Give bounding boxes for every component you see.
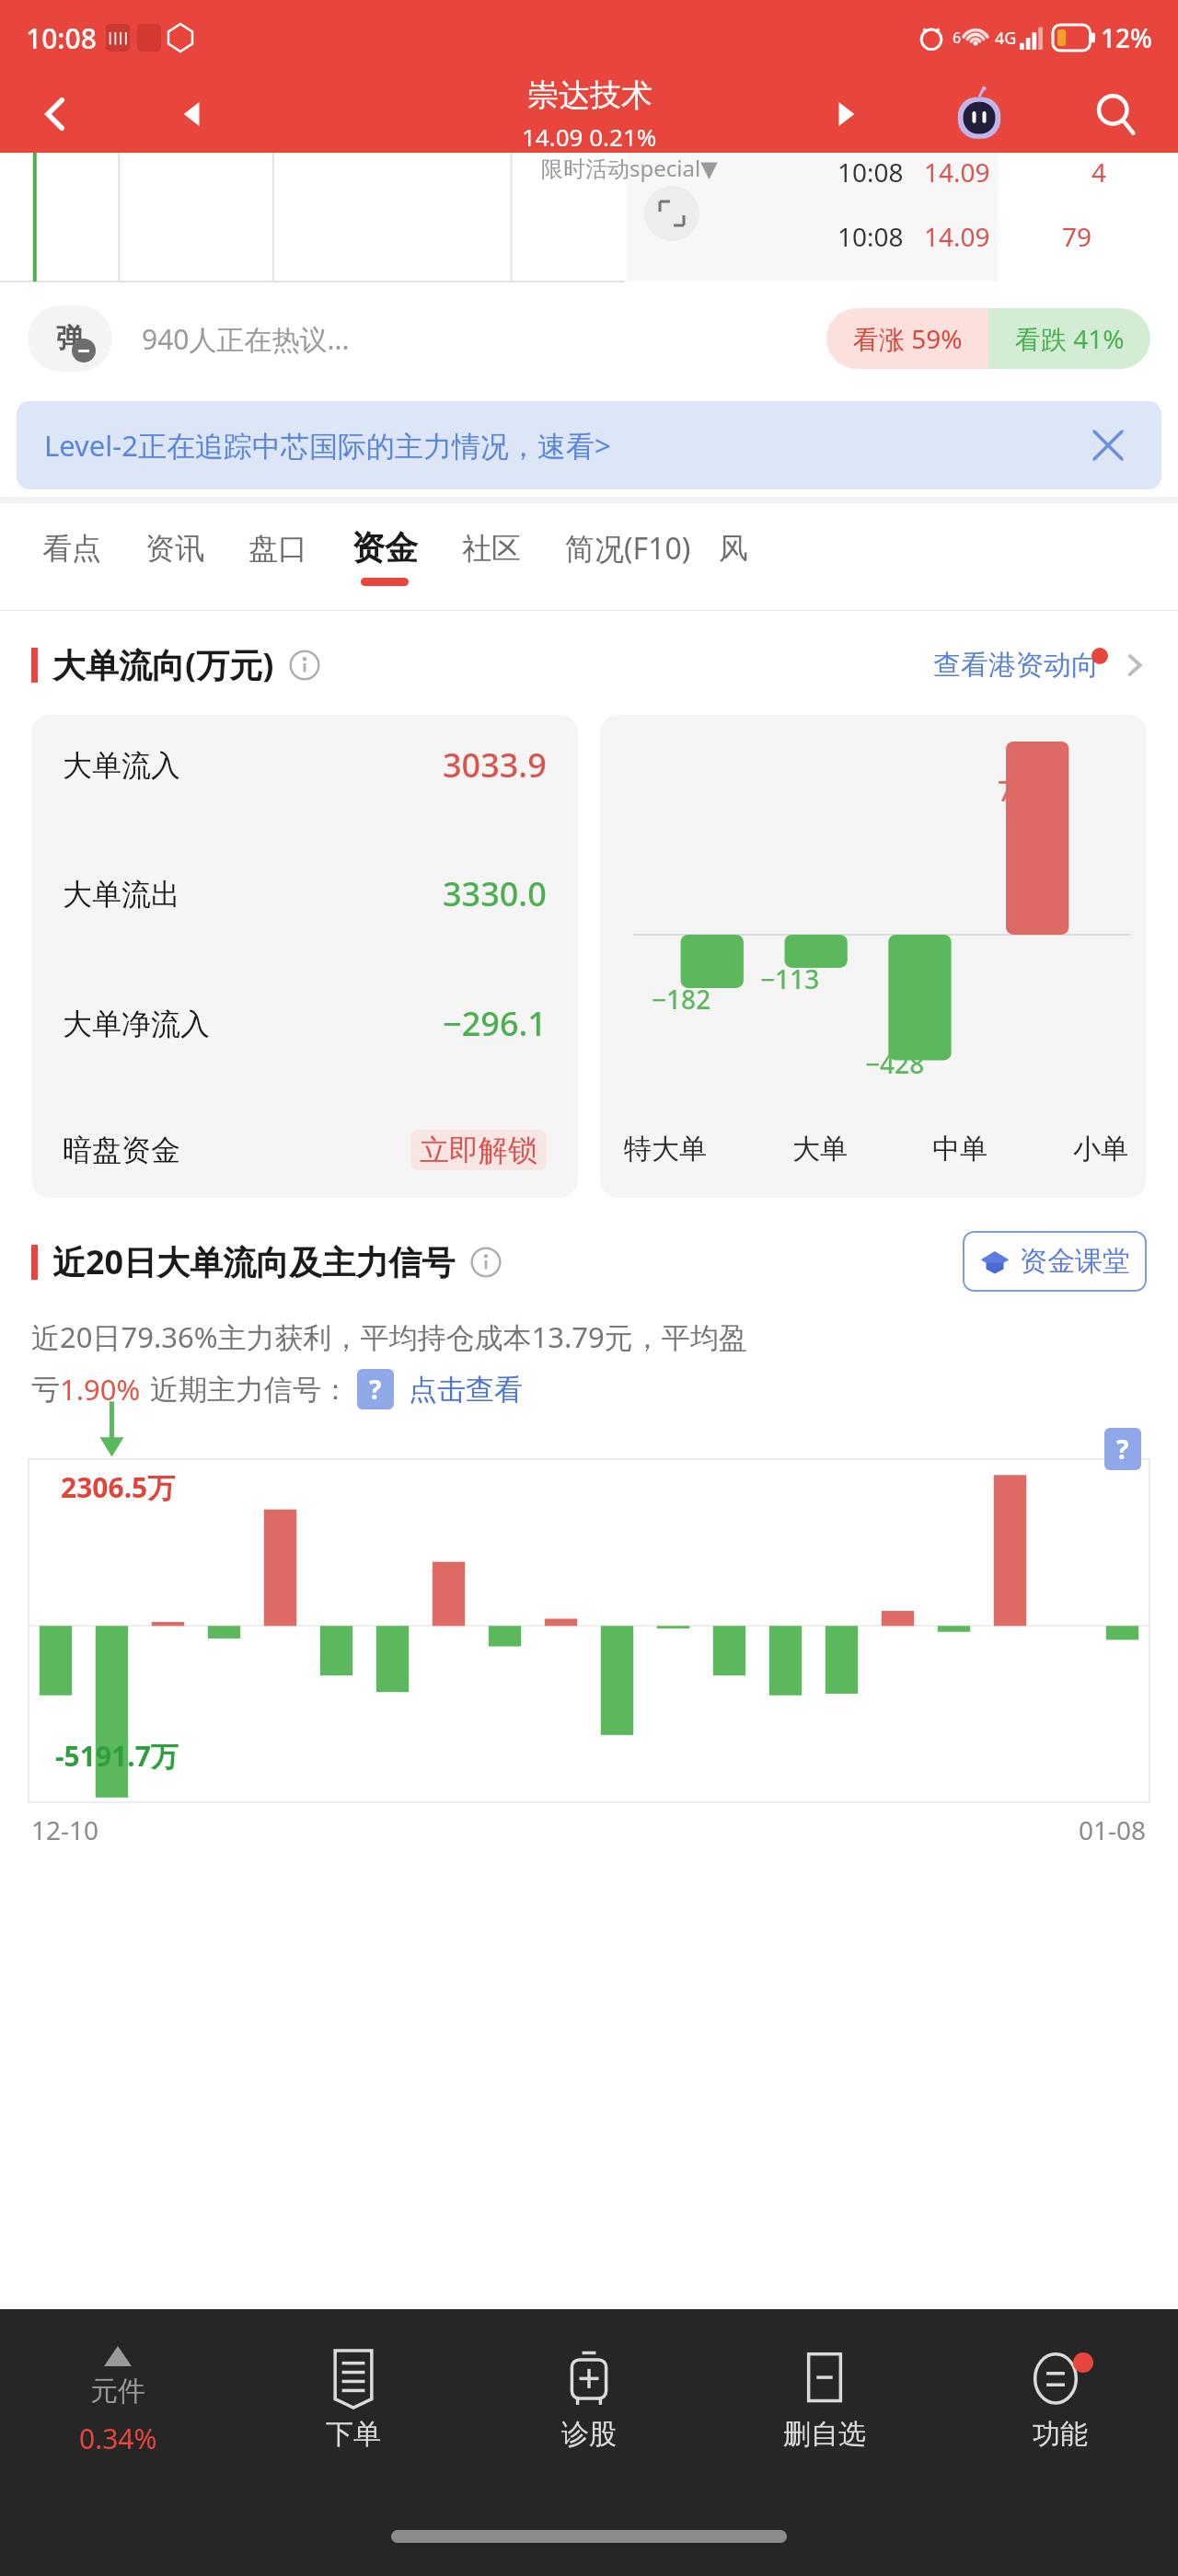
staticText: 弹 <box>56 321 84 356</box>
staticText: −182 <box>652 982 711 1017</box>
staticText: 3330.0 <box>443 871 547 916</box>
button[interactable]: 看点 <box>42 503 101 610</box>
staticText: 14.09 <box>924 155 990 190</box>
staticText: 简况(F10) <box>565 528 691 569</box>
button[interactable]: 下单 <box>236 2309 471 2493</box>
button[interactable]: Back <box>22 81 88 147</box>
staticText: 近期主力信号： <box>150 1372 350 1408</box>
button[interactable]: 查看港资动向 <box>933 648 1147 683</box>
staticText: 查看港资动向 <box>933 648 1099 683</box>
button[interactable]: Level-2正在追踪中芯国际的主力情况，速看> <box>17 401 1161 489</box>
staticText: 看点 <box>42 530 101 567</box>
staticText: 删自选 <box>783 2417 866 2452</box>
button[interactable]: 立即解锁 <box>410 1130 547 1170</box>
staticText: 暗盘资金 <box>63 1132 180 1168</box>
staticText: 崇达技术 <box>527 75 653 115</box>
button[interactable]: AI assistant <box>946 81 1012 147</box>
button[interactable]: Search <box>1079 77 1152 151</box>
button[interactable]: 诊股 <box>471 2309 707 2493</box>
staticText: 盘口 <box>248 530 307 567</box>
button[interactable]: 点击查看 <box>409 1372 523 1408</box>
staticText: 10:08 <box>837 219 904 254</box>
staticText: 3033.9 <box>443 742 547 788</box>
button[interactable]: 盘口 <box>248 503 307 610</box>
staticText: 6 <box>953 28 962 48</box>
staticText: 立即解锁 <box>420 1132 537 1168</box>
staticText: 看涨 59% <box>853 321 963 356</box>
staticText: 亏 <box>31 1372 60 1408</box>
button[interactable]: 社区 <box>462 503 521 610</box>
staticText: 14.09 <box>924 219 990 254</box>
staticText: 限时活动special▼ <box>541 153 718 183</box>
staticText: 近20日79.36%主力获利，平均持仓成本13.79元，平均盈 <box>31 1317 747 1356</box>
staticText: 14.09 0.21% <box>522 121 657 153</box>
staticText: 1.90% <box>60 1370 141 1409</box>
staticText: 看跌 41% <box>1015 321 1125 356</box>
staticText: −428 <box>865 1046 925 1081</box>
staticText: 79 <box>1062 219 1092 254</box>
staticText: 风 <box>719 530 748 567</box>
button[interactable]: Previous stock <box>164 85 223 144</box>
staticText: Level-2正在追踪中芯国际的主力情况，速看> <box>44 426 611 465</box>
staticText: 大单流入 <box>63 747 180 784</box>
button[interactable]: 简况(F10) <box>565 503 691 610</box>
staticText: 诊股 <box>561 2417 617 2452</box>
button[interactable]: Next stock <box>815 85 874 144</box>
staticText: 下单 <box>326 2417 381 2452</box>
staticText: 01-08 <box>1079 1812 1147 1847</box>
staticText: 大单流出 <box>63 876 180 913</box>
staticText: −113 <box>760 961 820 996</box>
button[interactable]: 风 <box>719 503 748 610</box>
button[interactable]: Expand <box>644 186 699 241</box>
staticText: ? <box>369 1372 382 1407</box>
staticText: 0.34% <box>79 2420 157 2457</box>
button[interactable]: Help <box>1104 1428 1141 1470</box>
staticText: 资金课堂 <box>1020 1244 1130 1279</box>
staticText: 特大单 <box>624 1132 707 1167</box>
button[interactable]: 元件 <box>0 2309 236 2493</box>
button[interactable]: 弹 <box>0 283 1178 394</box>
staticText: 资讯 <box>145 530 204 567</box>
staticText: 元件 <box>90 2374 145 2409</box>
staticText: 大单 <box>792 1132 848 1167</box>
button[interactable]: 资讯 <box>145 503 204 610</box>
staticText: 2306.5万 <box>61 1468 176 1506</box>
staticText: 12% <box>1101 20 1152 55</box>
staticText: 资金 <box>352 527 418 569</box>
button[interactable]: 资金 <box>352 503 418 610</box>
staticText: 功能 <box>1033 2417 1088 2452</box>
staticText: 近20日大单流向及主力信号 <box>52 1239 456 1284</box>
staticText: 12-10 <box>31 1812 99 1847</box>
staticText: 10:08 <box>26 19 97 57</box>
staticText: 大单净流入 <box>63 1006 210 1042</box>
button[interactable]: 功能 <box>942 2309 1178 2493</box>
staticText: 小单 <box>1073 1132 1128 1167</box>
staticText: 4G <box>995 27 1017 50</box>
button[interactable]: 资金课堂 <box>963 1231 1147 1292</box>
staticText: −296.1 <box>443 1001 547 1046</box>
staticText: 940人正在热议... <box>142 320 350 358</box>
button[interactable]: 删自选 <box>707 2309 942 2493</box>
staticText: ? <box>1116 1432 1129 1466</box>
staticText: 724 <box>998 772 1045 810</box>
staticText: 4 <box>1091 155 1107 190</box>
staticText: -5191.7万 <box>55 1737 179 1775</box>
staticText: 中单 <box>932 1132 987 1167</box>
button[interactable]: Close <box>1082 420 1134 471</box>
staticText: 社区 <box>462 530 521 567</box>
staticText: 大单流向(万元) <box>52 642 274 687</box>
staticText: 点击查看 <box>409 1372 523 1408</box>
staticText: 10:08 <box>837 155 904 190</box>
